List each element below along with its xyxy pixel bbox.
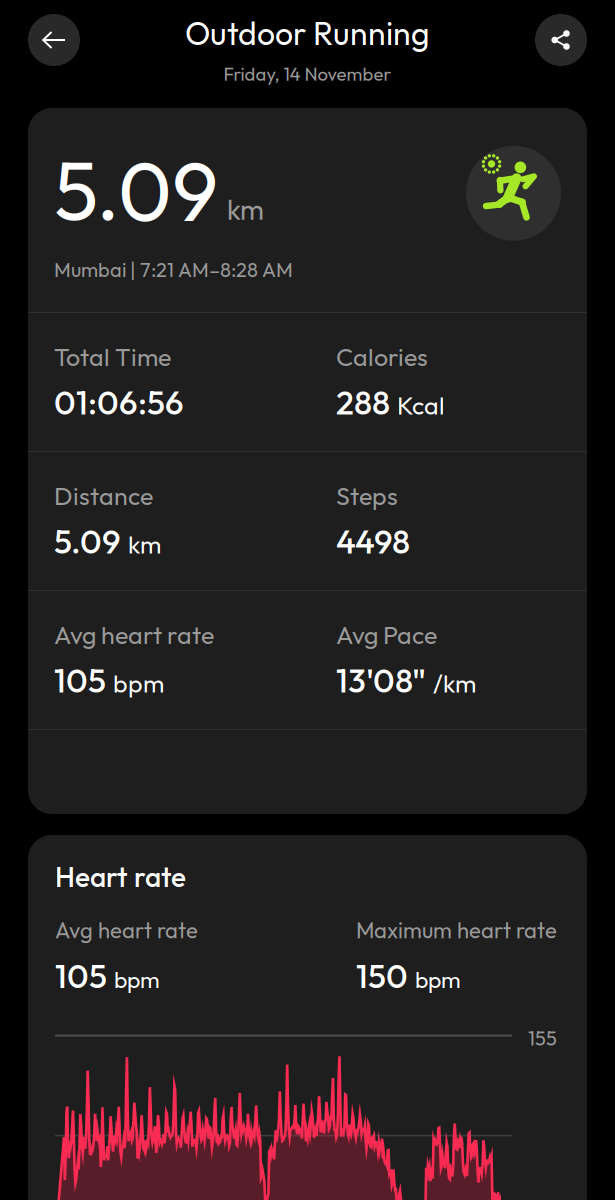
staticText: 155 — [528, 1026, 557, 1051]
staticText: Mumbai | 7:21 AM–8:28 AM — [54, 257, 293, 282]
staticText: 13'08" — [336, 659, 426, 701]
staticText: Avg Pace — [336, 619, 437, 650]
staticText: Distance — [54, 480, 153, 511]
staticText: /km — [433, 667, 476, 699]
staticText: Avg heart rate — [54, 619, 214, 650]
staticText: bpm — [114, 965, 160, 994]
staticText: Avg heart rate — [55, 916, 198, 944]
staticText: 01:06:56 — [54, 381, 184, 423]
staticText: 105 — [55, 955, 107, 997]
staticText: 105 — [54, 659, 106, 701]
staticText: 288 — [336, 381, 390, 423]
staticText: bpm — [113, 667, 164, 699]
staticText: km — [227, 192, 264, 227]
button[interactable]: Back — [28, 14, 80, 66]
staticText: Steps — [336, 480, 398, 511]
staticText: 5.09 — [54, 138, 218, 241]
staticText: Friday, 14 November — [223, 62, 391, 86]
staticText: Maximum heart rate — [356, 916, 557, 944]
staticText: Total Time — [54, 341, 171, 372]
staticText: 4498 — [336, 520, 410, 562]
staticText: Kcal — [397, 389, 445, 421]
staticText: km — [128, 528, 161, 560]
staticText: 150 — [356, 955, 408, 997]
staticText: Heart rate — [55, 859, 186, 894]
staticText: bpm — [415, 965, 461, 994]
staticText: Calories — [336, 341, 428, 372]
button[interactable]: Share — [535, 14, 587, 66]
staticText: 5.09 — [54, 520, 121, 562]
staticText: Outdoor Running — [185, 13, 430, 53]
